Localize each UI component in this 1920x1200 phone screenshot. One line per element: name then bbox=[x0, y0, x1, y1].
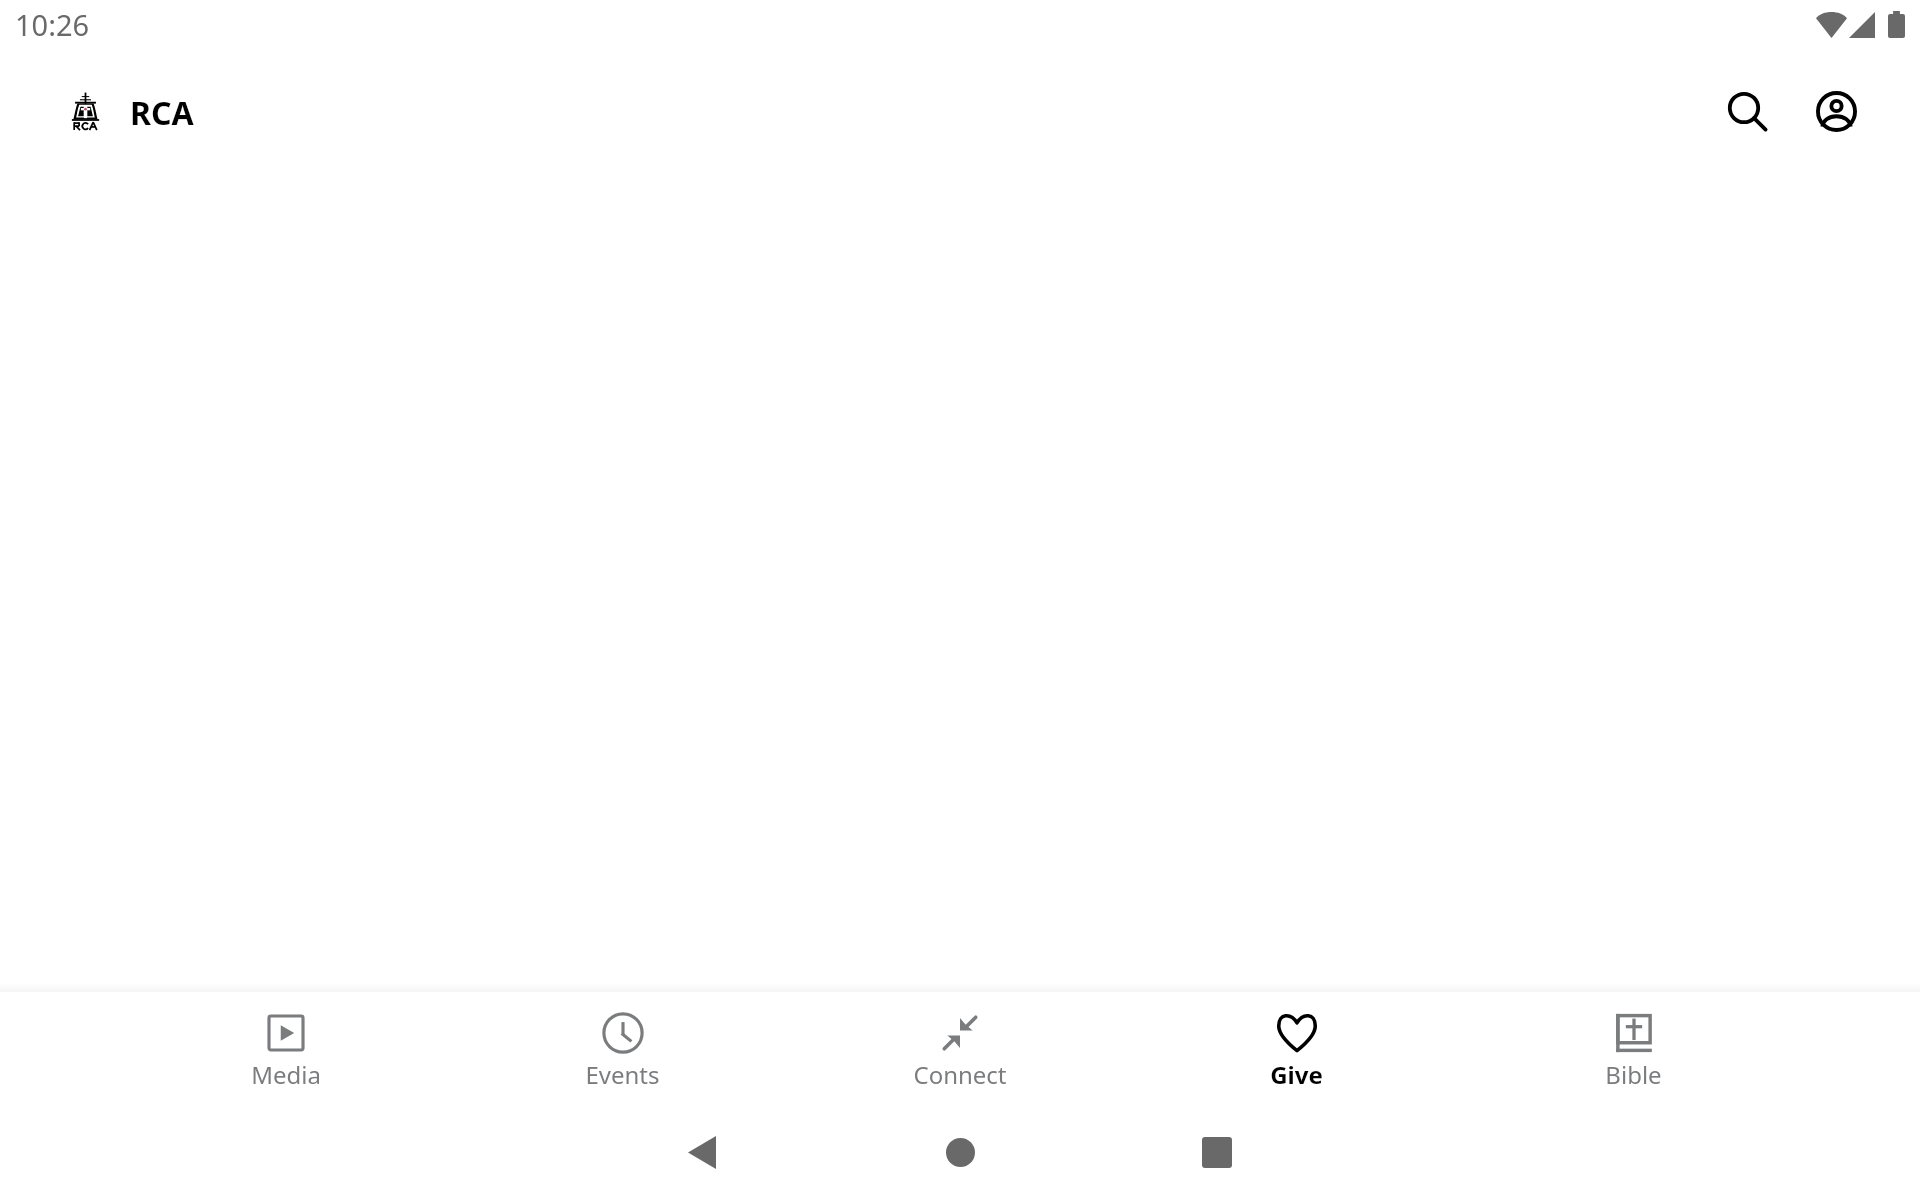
button[interactable]: Connect bbox=[791, 996, 1128, 1101]
staticText: RCA bbox=[130, 91, 194, 135]
button[interactable]: Account bbox=[1788, 63, 1884, 159]
button[interactable]: Bible bbox=[1465, 996, 1802, 1101]
button[interactable]: Search bbox=[1700, 64, 1796, 160]
button[interactable]: Media bbox=[117, 996, 454, 1101]
staticText: 10:26 bbox=[15, 5, 90, 44]
staticText: Connect bbox=[913, 1058, 1007, 1091]
button[interactable]: Events bbox=[454, 996, 791, 1101]
staticText: Bible bbox=[1605, 1058, 1662, 1091]
staticText: Events bbox=[585, 1058, 660, 1091]
button[interactable]: Back bbox=[646, 1110, 758, 1194]
staticText: Give bbox=[1270, 1058, 1323, 1091]
staticText: Media bbox=[251, 1058, 321, 1091]
button[interactable]: Give bbox=[1128, 996, 1465, 1101]
button[interactable]: Recents bbox=[1161, 1110, 1273, 1194]
button[interactable]: RCA bbox=[55, 75, 210, 147]
button[interactable]: Home bbox=[904, 1110, 1016, 1194]
